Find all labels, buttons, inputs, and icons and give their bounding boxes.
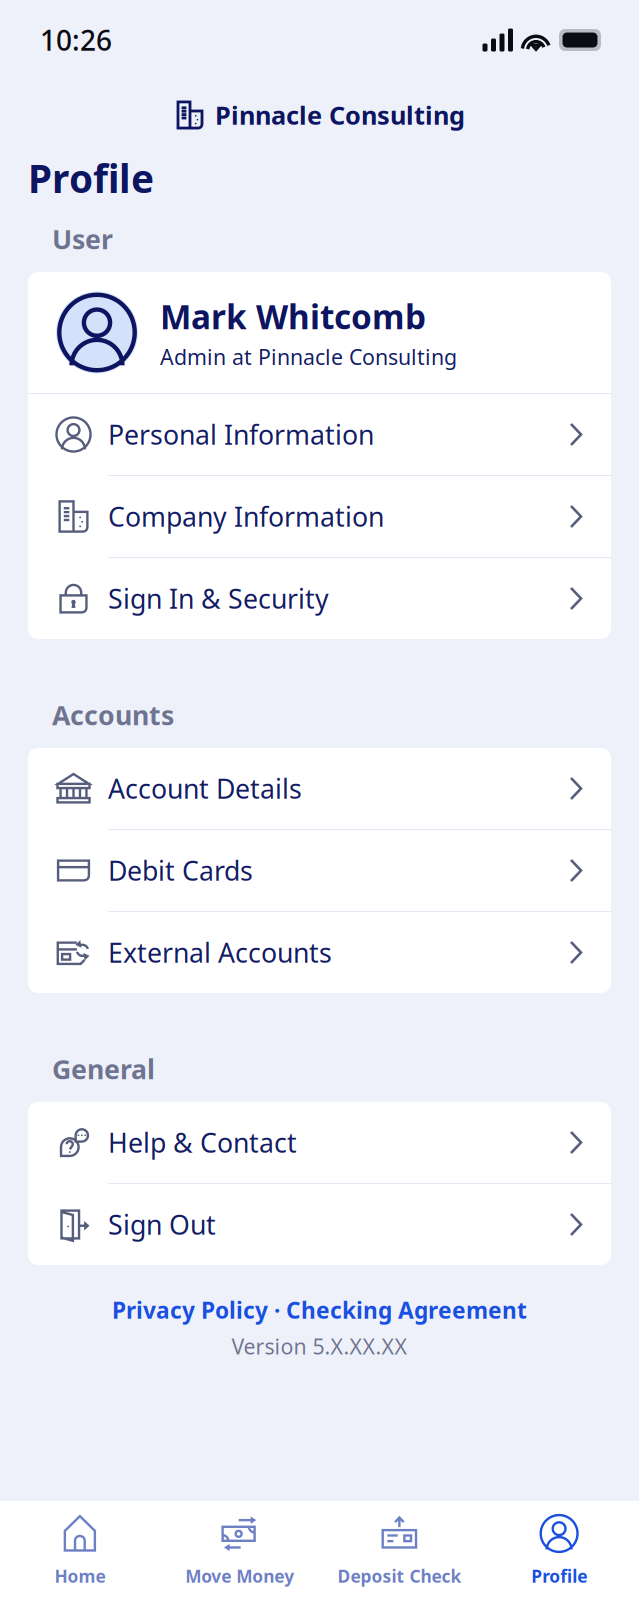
button[interactable]: Privacy Policy · Checking Agreement xyxy=(112,1295,527,1325)
staticText: Privacy Policy · Checking Agreement xyxy=(112,1295,527,1325)
button[interactable]: Home xyxy=(0,1513,160,1587)
staticText: Deposit Check xyxy=(337,1564,461,1587)
staticText: Pinnacle Consulting xyxy=(215,98,465,132)
staticText: Mark Whitcomb xyxy=(160,294,426,338)
button[interactable]: Sign In & Security xyxy=(28,558,611,639)
staticText: Debit Cards xyxy=(108,853,253,888)
staticText: Personal Information xyxy=(108,417,374,452)
button[interactable]: Help & Contact xyxy=(28,1102,611,1183)
button[interactable]: Company Information xyxy=(28,476,611,557)
staticText: Account Details xyxy=(108,771,302,806)
staticText: User xyxy=(52,221,113,257)
staticText: Home xyxy=(54,1564,105,1587)
button[interactable]: Move Money xyxy=(160,1513,320,1587)
staticText: Sign Out xyxy=(108,1207,216,1242)
staticText: Profile xyxy=(28,152,154,204)
staticText: Sign In & Security xyxy=(108,581,329,616)
button[interactable]: Personal Information xyxy=(28,394,611,475)
button[interactable]: External Accounts xyxy=(28,912,611,993)
button[interactable]: Profile xyxy=(479,1513,639,1587)
staticText: Company Information xyxy=(108,499,384,534)
button[interactable]: Debit Cards xyxy=(28,830,611,911)
staticText: Admin at Pinnacle Consulting xyxy=(160,342,457,371)
button[interactable]: Account Details xyxy=(28,748,611,829)
staticText: General xyxy=(52,1051,155,1087)
staticText: Help & Contact xyxy=(108,1125,297,1160)
button[interactable]: Deposit Check xyxy=(319,1513,479,1587)
staticText: Move Money xyxy=(185,1564,294,1587)
staticText: Version 5.X.XX.XX xyxy=(231,1332,407,1360)
staticText: External Accounts xyxy=(108,935,332,970)
button[interactable]: Sign Out xyxy=(28,1184,611,1265)
staticText: 10:26 xyxy=(40,21,112,59)
staticText: Accounts xyxy=(52,697,174,733)
staticText: Profile xyxy=(531,1564,587,1587)
